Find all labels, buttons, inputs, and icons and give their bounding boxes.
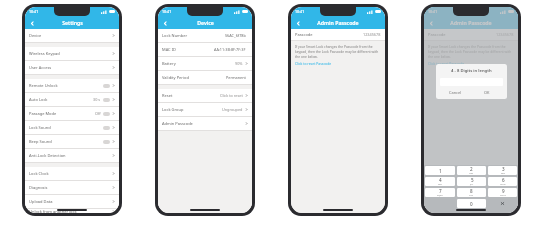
button[interactable]: Passage Mode <box>25 107 119 120</box>
staticText: 90% <box>235 61 243 66</box>
staticText: If your Smart Lock changes the Passcode … <box>428 44 514 59</box>
button[interactable]: Device <box>25 29 119 42</box>
staticText: Anti-Lock Detection <box>29 153 66 158</box>
staticText: Reset <box>162 93 173 98</box>
button[interactable]: Lock Group <box>158 103 252 116</box>
staticText: 0 <box>470 201 473 207</box>
staticText: 10:41 <box>162 9 172 14</box>
button[interactable]: Back <box>293 18 303 28</box>
staticText: 10:41 <box>295 9 305 14</box>
staticText: Admin Passcode <box>162 121 193 126</box>
button[interactable]: Remote Unlock <box>25 79 119 92</box>
staticText: 9 <box>502 188 505 194</box>
button[interactable]: User Access <box>25 61 119 74</box>
button[interactable]: Back <box>426 18 436 28</box>
button[interactable]: Unlock from another lock <box>25 209 119 213</box>
staticText: 3 <box>502 166 505 172</box>
staticText: Off <box>95 111 101 116</box>
button[interactable]: Beep Sound <box>25 135 119 148</box>
staticText: Lock Number <box>162 33 188 38</box>
staticText: Validity Period <box>162 75 189 80</box>
staticText: Click to reset <box>220 93 243 98</box>
staticText: Lock Clock <box>29 171 49 176</box>
staticText: Passcode <box>428 32 446 37</box>
button[interactable]: 0 <box>457 199 486 208</box>
button[interactable]: Back <box>160 18 170 28</box>
button[interactable]: 8 <box>457 188 486 197</box>
staticText: If your Smart Lock changes the Passcode … <box>295 44 381 59</box>
button[interactable]: Battery <box>158 57 252 70</box>
button[interactable]: 1 <box>425 166 455 175</box>
staticText: JKL <box>470 183 474 186</box>
staticText: Admin Passcode <box>317 19 359 26</box>
button[interactable]: Auto Lock <box>25 93 119 106</box>
staticText: Diagnosis <box>29 185 48 190</box>
button[interactable]: 4 <box>425 177 455 186</box>
button[interactable]: Click to reset Passcode <box>428 61 465 66</box>
button[interactable]: 5 <box>457 177 486 186</box>
staticText: 30 s <box>93 97 101 102</box>
staticText: Upload Data <box>29 199 53 204</box>
staticText: 7 <box>439 188 442 194</box>
staticText: Lock Group <box>162 107 184 112</box>
button[interactable]: Validity Period <box>158 71 252 84</box>
staticText: Cancel <box>449 90 462 95</box>
button[interactable]: Passcode <box>424 29 518 40</box>
staticText: Battery <box>162 61 176 66</box>
staticText: S6AC_6f78b <box>225 33 246 38</box>
button[interactable]: Passcode <box>291 29 385 40</box>
button[interactable]: 6 <box>488 177 517 186</box>
button[interactable]: Lock Clock <box>25 167 119 180</box>
staticText: TUV <box>469 194 474 197</box>
staticText: Passage Mode <box>29 111 57 116</box>
staticText: DEF <box>501 172 505 175</box>
button[interactable]: OK <box>471 90 503 95</box>
staticText: Click to reset Passcode <box>295 61 332 66</box>
staticText: OK <box>484 90 490 95</box>
button[interactable]: MAC ID <box>158 43 252 56</box>
staticText: Ungrouped <box>222 107 243 112</box>
staticText: ABC <box>469 172 474 175</box>
button[interactable]: 3 <box>488 166 517 175</box>
button[interactable]: Lock Sound <box>25 121 119 134</box>
staticText: MNO <box>500 183 506 186</box>
staticText: AA:11:3B:8F:7F:3F <box>214 47 246 52</box>
staticText: 8 <box>470 188 473 194</box>
staticText: 10:41 <box>29 9 39 14</box>
staticText: 2 <box>470 166 473 172</box>
button[interactable]: Delete <box>487 198 518 209</box>
button[interactable]: Anti-Lock Detection <box>25 149 119 162</box>
staticText: Auto Lock <box>29 97 48 102</box>
staticText: Lock Sound <box>29 125 51 130</box>
button[interactable]: Wireless Keypad <box>25 47 119 60</box>
staticText: MAC ID <box>162 47 176 52</box>
button[interactable]: Upload Data <box>25 195 119 208</box>
button[interactable]: 7 <box>425 188 455 197</box>
staticText: 5 <box>471 177 474 183</box>
staticText: Permanent <box>226 75 246 80</box>
button[interactable]: Admin Passcode <box>158 117 252 130</box>
staticText: 1 <box>439 168 442 174</box>
button[interactable]: Lock Number <box>158 29 252 42</box>
staticText: PQRS <box>437 194 443 197</box>
staticText: 12345678 <box>363 32 381 37</box>
staticText: Device <box>29 33 42 38</box>
staticText: User Access <box>29 65 52 70</box>
button[interactable]: 9 <box>488 188 517 197</box>
staticText: Remote Unlock <box>29 83 58 88</box>
staticText: Passcode <box>295 32 313 37</box>
button[interactable]: 2 <box>457 166 486 175</box>
staticText: Wireless Keypad <box>29 51 60 56</box>
button[interactable]: Diagnosis <box>25 181 119 194</box>
staticText: 6 <box>502 177 505 183</box>
button[interactable]: Cancel <box>440 90 471 95</box>
button[interactable]: Back <box>27 18 37 28</box>
staticText: Unlock from another lock <box>29 209 77 213</box>
button[interactable]: Reset <box>158 89 252 102</box>
staticText: 4 <box>439 177 442 183</box>
staticText: 10:41 <box>428 9 438 14</box>
staticText: GHI <box>438 183 442 186</box>
staticText: 12345678 <box>496 32 514 37</box>
button[interactable]: Click to reset Passcode <box>295 61 332 66</box>
